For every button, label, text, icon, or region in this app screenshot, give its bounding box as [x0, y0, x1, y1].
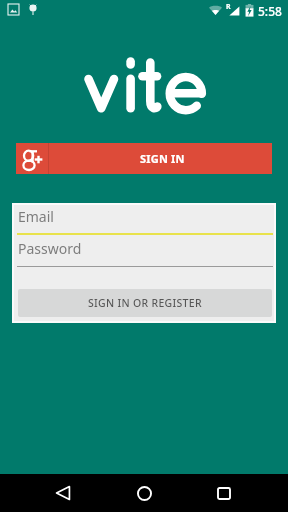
staticText: Email	[18, 207, 54, 226]
staticText: SIGN IN	[140, 151, 185, 166]
button[interactable]: Back	[45, 474, 81, 512]
staticText: SIGN IN OR REGISTER	[88, 296, 202, 310]
button[interactable]: SIGN IN	[16, 143, 272, 174]
button[interactable]: Recent apps	[206, 474, 242, 512]
button[interactable]: SIGN IN OR REGISTER	[18, 289, 272, 317]
staticText: R	[226, 2, 231, 12]
button[interactable]: Home	[126, 474, 162, 512]
staticText: 5:58	[258, 3, 282, 19]
button[interactable]: Password	[17, 237, 273, 266]
staticText: Password	[18, 239, 82, 258]
button[interactable]: Email	[17, 205, 273, 234]
